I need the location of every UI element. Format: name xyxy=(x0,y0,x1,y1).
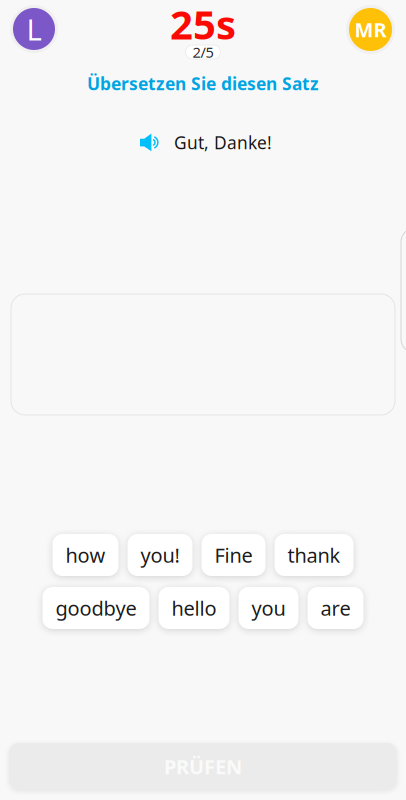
staticText: you xyxy=(251,595,285,621)
button[interactable]: Player L xyxy=(10,5,58,53)
staticText: are xyxy=(320,595,350,621)
button[interactable]: hello xyxy=(158,587,229,629)
button[interactable]: Play audio xyxy=(140,133,158,151)
button[interactable]: are xyxy=(307,587,363,629)
staticText: Fine xyxy=(214,542,252,568)
button[interactable]: how xyxy=(52,534,118,576)
button[interactable]: goodbye xyxy=(42,587,149,629)
staticText: PRÜFEN xyxy=(164,753,242,780)
staticText: hello xyxy=(171,595,216,621)
staticText: MR xyxy=(354,16,386,43)
staticText: L xyxy=(26,9,41,48)
button[interactable]: you! xyxy=(127,534,192,576)
staticText: Gut, Danke! xyxy=(174,131,272,154)
staticText: thank xyxy=(287,542,340,568)
button[interactable]: Fine xyxy=(201,534,265,576)
button[interactable]: Player MR xyxy=(346,5,395,54)
button[interactable]: you xyxy=(238,587,298,629)
staticText: goodbye xyxy=(55,595,136,621)
staticText: how xyxy=(65,542,105,568)
staticText: 25s xyxy=(170,0,236,50)
staticText: you! xyxy=(140,542,179,568)
button[interactable]: thank xyxy=(274,534,353,576)
staticText: 2/5 xyxy=(192,42,213,62)
staticText: Übersetzen Sie diesen Satz xyxy=(87,72,319,95)
